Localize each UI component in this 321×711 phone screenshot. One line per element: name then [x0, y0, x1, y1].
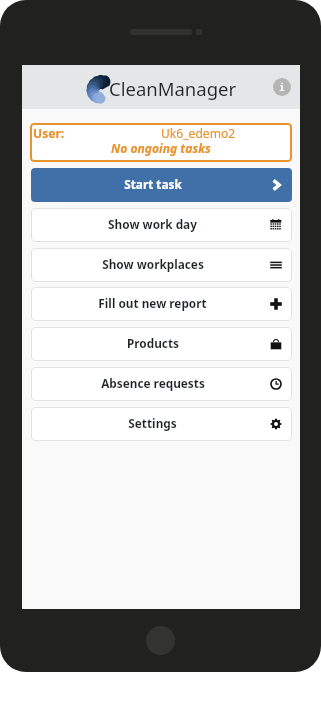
- staticText: Products: [127, 335, 179, 351]
- button[interactable]: Show work day: [31, 208, 292, 242]
- button[interactable]: Show workplaces: [31, 248, 292, 282]
- button[interactable]: Start task: [31, 168, 292, 202]
- button[interactable]: Fill out new report: [31, 287, 292, 321]
- staticText: User:: [33, 125, 65, 141]
- staticText: Settings: [128, 415, 177, 431]
- staticText: Absence requests: [101, 375, 205, 391]
- staticText: Show workplaces: [102, 256, 204, 272]
- button[interactable]: Absence requests: [31, 367, 292, 401]
- staticText: Show work day: [108, 216, 197, 232]
- button[interactable]: Products: [31, 327, 292, 361]
- button[interactable]: Settings: [31, 407, 292, 441]
- staticText: Uk6_edemo2: [161, 125, 236, 141]
- staticText: CleanManager: [109, 76, 237, 101]
- staticText: No ongoing tasks: [111, 140, 211, 156]
- staticText: Fill out new report: [98, 295, 207, 311]
- button[interactable]: Info: [273, 78, 291, 96]
- staticText: Start task: [124, 176, 182, 192]
